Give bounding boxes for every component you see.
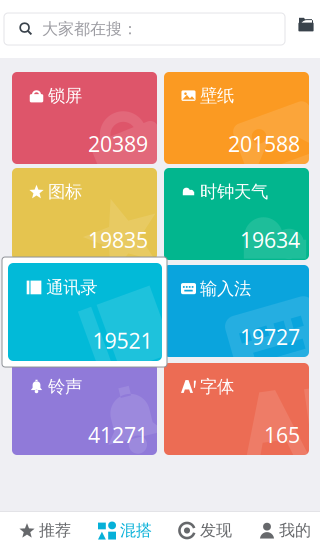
staticText: 我的 xyxy=(279,521,311,540)
button[interactable]: 推荐 xyxy=(5,511,85,550)
staticText: 锁屏 xyxy=(48,85,82,106)
button[interactable]: 我的 xyxy=(245,511,320,550)
staticText: 推荐 xyxy=(39,521,71,540)
staticText: 输入法 xyxy=(200,278,251,299)
staticText: 时钟天气 xyxy=(200,181,268,202)
staticText: 19727 xyxy=(240,323,300,351)
button[interactable]: 字体 xyxy=(164,363,309,455)
staticText: 发现 xyxy=(200,521,232,540)
button[interactable]: 铃声 xyxy=(12,363,157,455)
staticText: 大家都在搜： xyxy=(42,19,138,39)
staticText: 字体 xyxy=(200,376,234,397)
button[interactable]: 壁纸 xyxy=(164,72,309,164)
staticText: 混搭 xyxy=(120,521,152,540)
button[interactable]: 图标 xyxy=(12,168,157,260)
staticText: 通讯录 xyxy=(46,277,97,298)
staticText: 19835 xyxy=(88,226,148,254)
staticText: 19521 xyxy=(92,326,152,355)
button[interactable]: 文件夹 xyxy=(295,14,317,36)
staticText: 20389 xyxy=(88,130,148,158)
button[interactable]: 通讯录 xyxy=(8,263,162,361)
staticText: 铃声 xyxy=(48,376,82,397)
staticText: 壁纸 xyxy=(200,85,234,106)
button[interactable]: 混搭 xyxy=(85,511,165,550)
staticText: 19634 xyxy=(240,226,300,254)
button[interactable]: 锁屏 xyxy=(12,72,157,164)
staticText: 165 xyxy=(264,421,300,449)
button[interactable]: 时钟天气 xyxy=(164,168,309,260)
staticText: 41271 xyxy=(88,421,148,449)
button[interactable]: 大家都在搜： xyxy=(4,13,285,45)
staticText: 图标 xyxy=(48,181,82,202)
button[interactable]: 发现 xyxy=(165,511,245,550)
button[interactable]: 输入法 xyxy=(164,265,309,357)
staticText: 201588 xyxy=(228,130,300,158)
